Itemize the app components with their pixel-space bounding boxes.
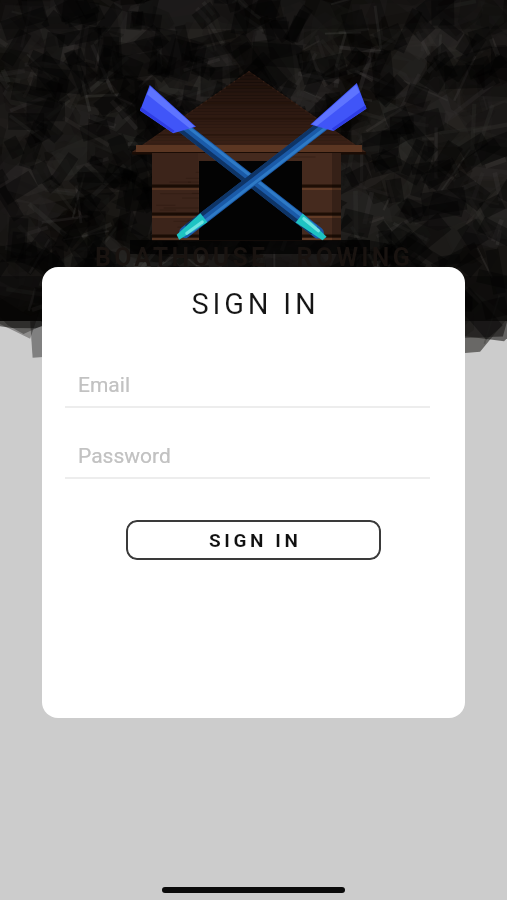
staticText: BOATHOUSE ROWING bbox=[95, 243, 413, 272]
button[interactable]: Email bbox=[65, 373, 430, 408]
staticText: SIGN IN bbox=[44, 287, 465, 321]
staticText: Email bbox=[78, 373, 130, 398]
staticText: Password bbox=[78, 444, 171, 469]
button[interactable]: SIGN IN bbox=[126, 520, 381, 560]
staticText: SIGN IN bbox=[209, 529, 302, 551]
button[interactable]: Password bbox=[65, 444, 430, 479]
